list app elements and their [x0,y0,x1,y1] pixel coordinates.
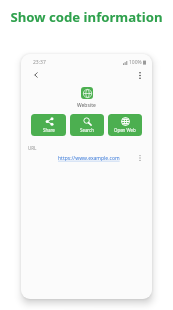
staticText: Search [80,127,94,133]
button[interactable]: https://www.example.com [43,155,134,162]
button[interactable]: More options [133,68,147,82]
staticText: https://www.example.com [58,155,120,162]
button[interactable]: Open Web [108,114,142,136]
button[interactable]: Back [29,68,43,82]
staticText: Share [43,127,55,133]
staticText: Show code information [0,8,173,26]
staticText: 100% [129,59,142,66]
staticText: URL [28,145,37,151]
button[interactable]: Share [31,114,66,136]
staticText: Website [77,102,96,109]
staticText: Open Web [114,127,136,133]
button[interactable]: URL options [134,152,146,164]
button[interactable]: Search [70,114,104,136]
staticText: 23:37 [33,59,46,66]
